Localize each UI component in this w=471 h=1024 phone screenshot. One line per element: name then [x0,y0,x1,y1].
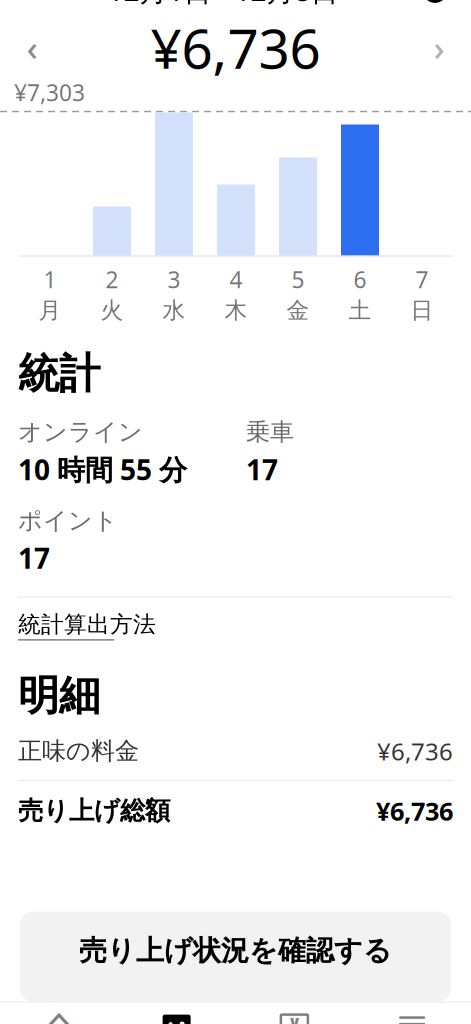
staticText: 統計算出方法 [18,611,156,638]
staticText: 売り上げ状況を確認する [79,934,392,968]
staticText: 月 [38,297,61,324]
button[interactable]: 次の週 [416,24,462,70]
staticText: 5 [291,264,304,295]
button[interactable]: ∨ [235,1001,353,1024]
staticText: 17 [246,451,278,488]
button[interactable]: メニュー [353,1001,471,1024]
staticText: ? [429,0,440,5]
button[interactable]: ⌂ [0,1001,118,1024]
staticText: 7 [415,264,428,295]
staticText: 10 時間 55 分 [18,451,187,488]
staticText: 統計 [18,348,100,399]
staticText: ¥6,736 [376,794,453,828]
staticText: 17 [18,539,50,577]
staticText: 日 [410,297,433,324]
staticText: ∨ [287,1012,301,1024]
staticText: 1 [43,264,56,295]
staticText: 火 [100,297,123,324]
staticText: 乗車 [246,417,294,447]
staticText: 2 [105,264,118,295]
staticText: ¥6,736 [150,11,320,84]
button[interactable]: 統計算出方法 [18,598,156,644]
button[interactable]: ヘルプ [408,0,462,14]
staticText: オンライン [18,417,143,447]
staticText: 12月1日 - 12月8日 [107,0,338,9]
staticText: 6 [353,264,366,295]
staticText: 木 [224,297,247,324]
button[interactable]: 前の週 [9,24,55,70]
staticText: 4 [229,264,242,295]
staticText: 3 [167,264,180,295]
staticText: 水 [162,297,185,324]
staticText: ‹ [26,24,37,70]
button[interactable]: 売り上げ状況を確認する [20,912,451,1002]
button[interactable]: 売り上げ [118,1001,236,1024]
staticText: ¥6,736 [377,735,453,767]
staticText: 土 [348,297,371,324]
staticText: 売り上げ総額 [18,795,170,826]
staticText: 正味の料金 [18,736,139,766]
staticText: ⌂ [44,998,73,1024]
staticText: 明細 [18,670,100,721]
staticText: ポイント [18,506,118,535]
staticText: ¥7,303 [14,77,85,107]
staticText: 金 [286,297,309,324]
staticText: › [433,24,444,70]
